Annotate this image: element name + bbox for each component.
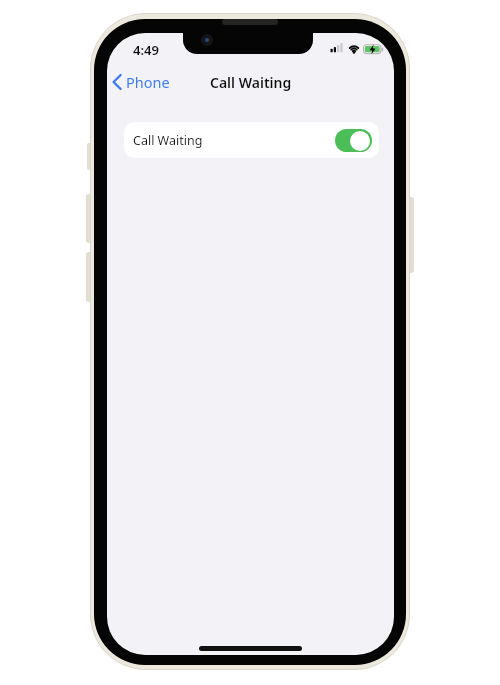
button[interactable]: Phone — [108, 72, 170, 92]
button[interactable]: Call Waiting — [124, 122, 379, 158]
staticText: Call Waiting — [210, 73, 292, 92]
staticText: Call Waiting — [133, 132, 335, 149]
staticText: 4:49 — [133, 41, 159, 59]
staticText: Phone — [126, 72, 170, 92]
button[interactable] — [335, 129, 372, 152]
